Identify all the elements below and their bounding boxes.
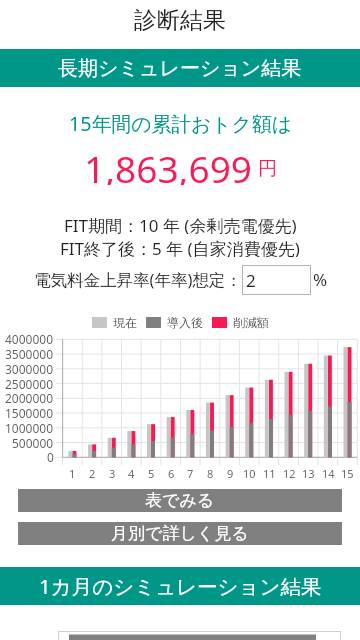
staticText: 1,863,699 <box>84 143 252 185</box>
staticText: 1000000 <box>5 420 54 436</box>
staticText: 12 <box>283 466 296 480</box>
button[interactable]: 月別で詳しく見る <box>18 522 342 545</box>
staticText: 長期シミュレーション結果 <box>58 56 302 81</box>
staticText: 13 <box>302 466 315 480</box>
staticText: 2 <box>246 269 256 292</box>
staticText: 14 <box>322 466 335 480</box>
staticText: 月別で詳しく見る <box>111 523 249 544</box>
staticText: 5 <box>148 466 155 480</box>
staticText: 4000000 <box>5 331 54 347</box>
button[interactable]: 2 <box>242 265 311 295</box>
staticText: FIT期間：10 年 (余剰売電優先) <box>64 214 297 234</box>
staticText: 診断結果 <box>134 6 226 35</box>
staticText: 9 <box>227 466 234 480</box>
staticText: 7 <box>187 466 194 480</box>
staticText: 4 <box>128 466 135 480</box>
staticText: 15年間の累計おトク額は <box>69 110 292 134</box>
staticText: 0 <box>47 449 54 465</box>
staticText: 3000000 <box>5 361 54 377</box>
staticText: 表でみる <box>145 490 215 511</box>
button[interactable]: 表でみる <box>18 489 342 512</box>
staticText: 15 <box>341 466 354 480</box>
staticText: 8 <box>207 466 214 480</box>
staticText: 11 <box>263 466 276 480</box>
staticText: 3500000 <box>5 346 54 362</box>
staticText: 円 <box>258 157 277 181</box>
staticText: 電気料金上昇率(年率)想定： <box>34 268 242 291</box>
staticText: 500000 <box>12 435 54 451</box>
staticText: 6 <box>168 466 175 480</box>
staticText: 削減額 <box>233 315 269 330</box>
staticText: 10 <box>243 466 256 480</box>
staticText: 2 <box>89 466 96 480</box>
staticText: 現在 <box>113 315 137 330</box>
staticText: FIT終了後：5 年 (自家消費優先) <box>60 237 300 257</box>
staticText: % <box>313 268 328 291</box>
staticText: 1500000 <box>5 405 54 421</box>
staticText: 1カ月のシミュレーション結果 <box>39 572 322 600</box>
staticText: 2000000 <box>5 390 54 406</box>
staticText: 2500000 <box>5 376 54 392</box>
staticText: 導入後 <box>167 315 203 330</box>
staticText: 1 <box>69 466 76 480</box>
staticText: 3 <box>109 466 116 480</box>
